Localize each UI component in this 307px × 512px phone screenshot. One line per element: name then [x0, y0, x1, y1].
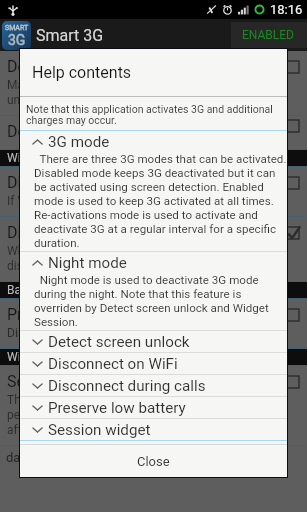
staticText: Detect screen on: [7, 122, 127, 141]
button[interactable]: Disconnect during calls: [0, 217, 307, 281]
button[interactable]: Preserve low battery: [0, 299, 307, 348]
button[interactable]: ENABLED: [231, 22, 307, 48]
staticText: 18:16: [270, 2, 303, 17]
staticText: Disable 3G when battery is low: [7, 326, 171, 340]
staticText: data after: [6, 450, 63, 465]
staticText: Battery: [7, 283, 46, 297]
staticText: Preserve low battery: [48, 399, 186, 417]
staticText: Disconnect on WiFi: [7, 173, 144, 192]
button[interactable]: Preserve low battery: [20, 396, 287, 418]
button[interactable]: Detect screen on: [0, 116, 307, 149]
staticText: Disconnect on WiFi: [48, 355, 178, 373]
staticText: When you are in a call 3G will be discon…: [7, 244, 178, 273]
staticText: Detect screen unlock: [7, 57, 157, 76]
button[interactable]: 3G mode: [20, 130, 287, 152]
staticText: There are three 3G modes that can be act…: [34, 152, 287, 250]
staticText: The widget makes it possible to start a …: [7, 393, 214, 437]
button[interactable]: Close: [20, 445, 287, 477]
staticText: Close: [137, 454, 170, 469]
staticText: Widget: [7, 350, 45, 364]
button[interactable]: Detect screen unlock: [20, 330, 287, 352]
staticText: 3G: [8, 32, 26, 48]
button[interactable]: Disconnect on WiFi: [0, 167, 307, 216]
staticText: Night mode is used to deactivate 3G mode…: [34, 273, 287, 329]
staticText: SMART: [5, 24, 29, 32]
staticText: Disconnect during calls: [48, 377, 206, 395]
staticText: Makes it possible to activate 3G when un…: [7, 78, 209, 107]
button[interactable]: Night mode: [20, 251, 287, 273]
staticText: Disconnect during calls: [7, 223, 173, 242]
staticText: Help contents: [32, 63, 132, 82]
button[interactable]: Detect screen unlock: [0, 51, 307, 115]
staticText: 3G mode: [48, 133, 110, 151]
button[interactable]: Disconnect on WiFi: [20, 352, 287, 374]
staticText: Session widget: [7, 372, 115, 391]
staticText: If WiFi is connected 3G is disabled: [7, 194, 190, 208]
button[interactable]: Session widget: [0, 366, 307, 445]
button[interactable]: Disconnect during calls: [20, 374, 287, 396]
staticText: Preserve low battery: [7, 305, 153, 324]
staticText: ENABLED: [242, 28, 294, 42]
staticText: Smart 3G: [36, 26, 104, 45]
staticText: Detect screen unlock: [48, 333, 190, 351]
button[interactable]: Session widget: [20, 418, 287, 440]
staticText: Note that this application activates 3G …: [26, 103, 281, 126]
button[interactable]: App icon: [2, 21, 31, 50]
staticText: Session widget: [48, 421, 151, 439]
staticText: WiFi: [7, 151, 31, 165]
staticText: Night mode: [48, 254, 127, 272]
